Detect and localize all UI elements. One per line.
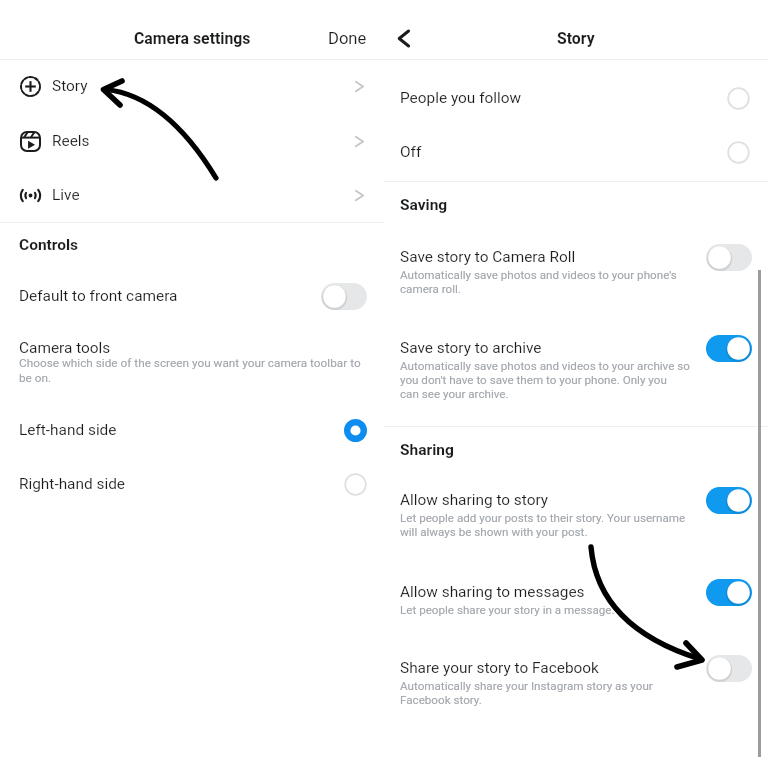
button[interactable]: Back (388, 18, 420, 59)
staticText: Controls (19, 236, 79, 254)
staticText: Left-hand side (19, 421, 117, 439)
staticText: Save story to Camera Roll (400, 248, 576, 266)
staticText: Reels (52, 132, 90, 150)
button[interactable]: Not selected (727, 141, 750, 164)
staticText: Share your story to Facebook (400, 659, 599, 677)
staticText: Sharing (400, 441, 454, 459)
button[interactable]: Default to front camera (0, 274, 384, 318)
button[interactable]: Controls (19, 236, 79, 254)
button[interactable]: On (706, 335, 752, 362)
button[interactable]: Off (384, 128, 768, 176)
button[interactable]: Story (0, 64, 384, 108)
staticText: People you follow (400, 89, 522, 107)
button[interactable]: Allow sharing to story (384, 491, 768, 539)
staticText: Saving (400, 196, 448, 214)
button[interactable]: Camera tools (19, 339, 111, 357)
button[interactable]: People you follow (384, 74, 768, 122)
staticText: Automatically save photos and videos to … (400, 359, 690, 401)
button[interactable]: Allow sharing to messages (384, 583, 768, 617)
button[interactable]: Done (310, 18, 384, 59)
staticText: Camera tools (19, 339, 111, 357)
button[interactable]: Not selected (344, 473, 367, 496)
staticText: Choose which side of the screen you want… (19, 356, 361, 384)
staticText: Story (557, 29, 595, 48)
staticText: Live (52, 186, 80, 204)
button[interactable]: Left-hand side (0, 408, 384, 452)
button[interactable]: Off (321, 283, 367, 310)
staticText: Save story to archive (400, 339, 542, 357)
button[interactable]: Selected (344, 419, 367, 442)
button[interactable]: On (706, 579, 752, 606)
button[interactable]: Reels (0, 119, 384, 163)
button[interactable]: Off (706, 244, 752, 271)
button[interactable]: Right-hand side (0, 462, 384, 506)
staticText: Story (52, 77, 88, 95)
staticText: Right-hand side (19, 475, 126, 493)
button[interactable]: Save story to Camera Roll (384, 248, 768, 296)
button[interactable]: On (706, 487, 752, 514)
button[interactable]: Share your story to Facebook (384, 659, 768, 707)
staticText: Allow sharing to messages (400, 583, 585, 601)
staticText: Let people add your posts to their story… (400, 511, 686, 539)
staticText: Automatically share your Instagram story… (400, 679, 653, 707)
button[interactable]: Off (706, 655, 752, 682)
staticText: Automatically save photos and videos to … (400, 268, 677, 296)
button[interactable]: Saving (400, 196, 448, 214)
button[interactable]: Live (0, 173, 384, 217)
button[interactable]: Not selected (727, 87, 750, 110)
button[interactable]: Save story to archive (384, 339, 768, 401)
staticText: Let people share your story in a message… (400, 603, 615, 617)
button[interactable]: Sharing (400, 441, 454, 459)
staticText: Default to front camera (19, 287, 178, 305)
staticText: Done (328, 29, 367, 48)
staticText: Allow sharing to story (400, 491, 549, 509)
staticText: Off (400, 143, 422, 161)
staticText: Camera settings (134, 29, 251, 48)
